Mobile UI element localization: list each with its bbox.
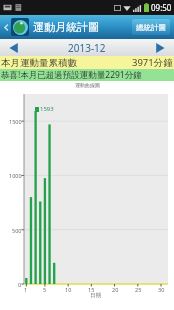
staticText: 10: [65, 286, 72, 293]
staticText: 運動月統計圖: [33, 20, 99, 34]
staticText: 1: [24, 286, 28, 293]
button[interactable]: App icon: [11, 18, 29, 36]
staticText: 運動曲線圖: [75, 82, 100, 88]
staticText: 恭喜!本月已超過預設運動量2291分鐘: [1, 69, 142, 81]
button[interactable]: 總統計圖: [132, 19, 170, 35]
staticText: 25: [135, 286, 142, 293]
staticText: 30: [158, 286, 165, 293]
staticText: 3971分鐘: [132, 56, 173, 69]
staticText: 0: [18, 281, 22, 288]
staticText: 500: [12, 227, 22, 234]
staticText: 本月運動量累積數: [1, 57, 77, 69]
staticText: 1000: [9, 172, 22, 179]
staticText: 15: [88, 286, 95, 293]
staticText: 總統計圖: [136, 23, 166, 32]
staticText: 5: [43, 286, 47, 293]
staticText: 20: [112, 286, 119, 293]
button[interactable]: 本月運動量累積數: [0, 56, 174, 69]
button[interactable]: Next month: [146, 39, 174, 56]
staticText: 日期: [90, 292, 101, 299]
staticText: 1500: [9, 118, 22, 125]
button[interactable]: 恭喜!本月已超過預設運動量2291分鐘: [0, 69, 174, 81]
button[interactable]: Up: [2, 23, 11, 32]
staticText: 2013-12: [68, 41, 106, 55]
staticText: 1593: [40, 105, 54, 113]
button[interactable]: Previous month: [0, 39, 28, 56]
staticText: 09:50: [151, 2, 172, 13]
